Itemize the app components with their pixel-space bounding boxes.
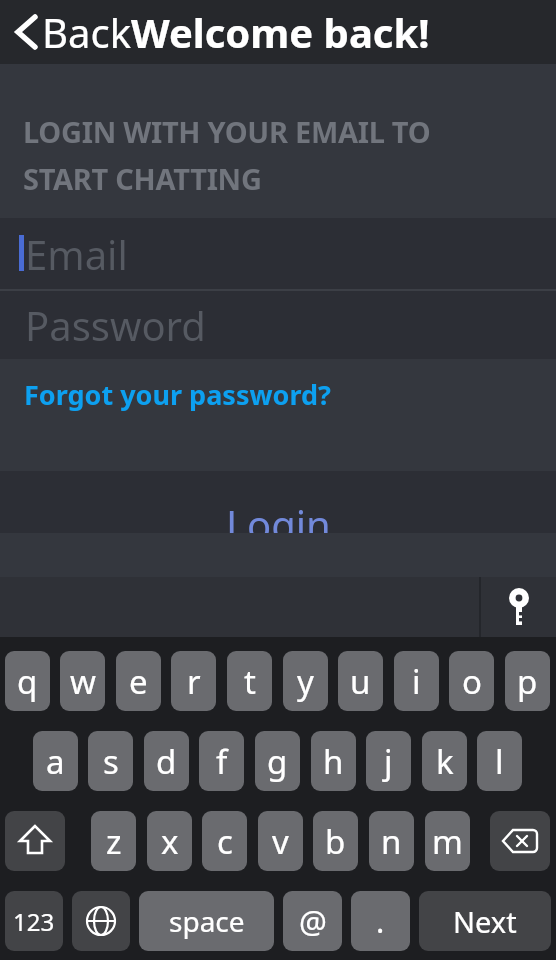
button[interactable]: a	[33, 731, 78, 791]
staticText: z	[106, 819, 122, 864]
button[interactable]: .	[351, 891, 410, 951]
staticText: i	[412, 659, 421, 704]
button[interactable]: b	[313, 811, 358, 871]
button[interactable]: 123	[5, 891, 63, 951]
staticText: l	[495, 739, 504, 784]
staticText: a	[46, 739, 65, 784]
staticText: r	[187, 659, 201, 704]
staticText: o	[462, 659, 482, 704]
button[interactable]	[481, 577, 556, 637]
button[interactable]: l	[477, 731, 522, 791]
staticText: 123	[13, 905, 55, 938]
button[interactable]: x	[147, 811, 192, 871]
button[interactable]: i	[394, 651, 439, 711]
button[interactable]: v	[258, 811, 303, 871]
button[interactable]: u	[338, 651, 383, 711]
staticText: Back	[42, 5, 131, 59]
staticText: n	[381, 819, 402, 864]
button[interactable]: t	[227, 651, 272, 711]
staticText: @	[299, 900, 327, 942]
button[interactable]: Next	[419, 891, 551, 951]
staticText: u	[350, 659, 371, 704]
staticText: space	[169, 902, 245, 940]
staticText: Next	[453, 902, 517, 941]
staticText: h	[323, 739, 344, 784]
button[interactable]: Forgot your password?	[12, 368, 432, 420]
staticText: t	[244, 659, 256, 704]
button[interactable]: p	[505, 651, 550, 711]
button[interactable]: g	[255, 731, 300, 791]
staticText: b	[325, 819, 346, 864]
button[interactable]: s	[88, 731, 133, 791]
button[interactable]: Password	[0, 291, 556, 359]
staticText: g	[267, 739, 288, 784]
staticText: .	[376, 900, 385, 942]
staticText: s	[103, 739, 119, 784]
staticText: p	[517, 659, 538, 704]
staticText: v	[272, 819, 289, 864]
staticText: y	[297, 659, 314, 704]
staticText: Email	[25, 227, 128, 281]
staticText: q	[17, 659, 38, 704]
staticText: j	[384, 739, 393, 784]
staticText: Forgot your password?	[24, 376, 331, 413]
button[interactable]: k	[422, 731, 467, 791]
staticText: m	[432, 819, 463, 864]
button[interactable]: z	[91, 811, 136, 871]
button[interactable]: @	[283, 891, 342, 951]
button[interactable]: n	[369, 811, 414, 871]
button[interactable]: o	[449, 651, 494, 711]
button[interactable]: c	[202, 811, 247, 871]
button[interactable]: space	[139, 891, 274, 951]
button[interactable]	[490, 811, 550, 871]
staticText: Password	[25, 298, 206, 352]
staticText: f	[216, 739, 228, 784]
button[interactable]	[5, 811, 65, 871]
button[interactable]: Login	[0, 471, 556, 533]
button[interactable]: w	[60, 651, 105, 711]
button[interactable]: Email	[0, 218, 556, 289]
staticText: k	[436, 739, 454, 784]
staticText: LOGIN WITH YOUR EMAIL TO START CHATTING	[23, 112, 431, 198]
button[interactable]: q	[5, 651, 50, 711]
button[interactable]: e	[116, 651, 161, 711]
button[interactable]	[72, 891, 130, 951]
button[interactable]: d	[144, 731, 189, 791]
button[interactable]: y	[283, 651, 328, 711]
button[interactable]: h	[311, 731, 356, 791]
staticText: x	[161, 819, 179, 864]
button[interactable]: j	[366, 731, 411, 791]
button[interactable]: r	[171, 651, 216, 711]
staticText: c	[217, 819, 233, 864]
staticText: w	[70, 659, 96, 704]
staticText: Welcome back!	[131, 5, 430, 59]
staticText: Login	[226, 497, 331, 533]
staticText: d	[156, 739, 177, 784]
staticText: e	[129, 659, 148, 704]
button[interactable]: m	[425, 811, 470, 871]
button[interactable]: f	[199, 731, 244, 791]
button[interactable]: Back	[10, 0, 550, 64]
